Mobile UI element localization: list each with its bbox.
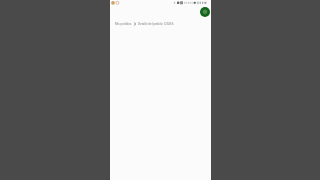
button[interactable]: Account xyxy=(200,7,210,17)
staticText: Mis pedidos xyxy=(115,22,132,26)
button[interactable]: Mis pedidos xyxy=(115,22,132,26)
staticText: Detalle del pedido 123456 xyxy=(138,22,174,26)
button[interactable]: Next xyxy=(134,22,136,26)
button[interactable]: Detalle del pedido 123456 xyxy=(138,22,174,26)
